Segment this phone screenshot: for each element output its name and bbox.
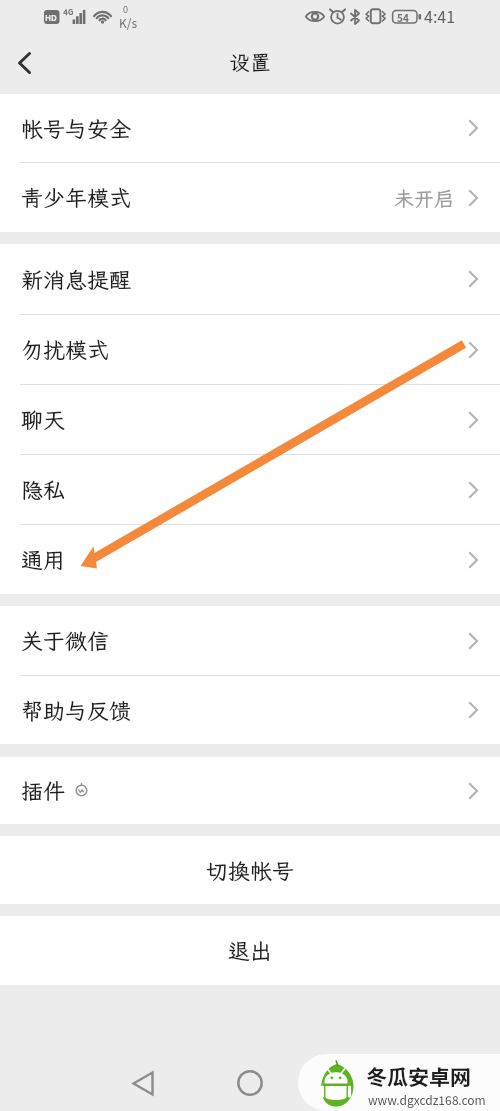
staticText: 退出 (228, 936, 273, 965)
staticText: 勿扰模式 (21, 335, 110, 364)
staticText: 聊天 (21, 405, 66, 434)
button[interactable]: 青少年模式 (0, 163, 500, 232)
staticText: 0 (123, 3, 128, 16)
staticText: 帮助与反馈 (21, 696, 132, 725)
staticText: 设置 (229, 48, 271, 76)
button[interactable]: 帐号与安全 (0, 94, 500, 162)
button[interactable]: 插件 (0, 757, 500, 824)
button[interactable]: Home (231, 1064, 269, 1102)
staticText: 青少年模式 (21, 183, 132, 212)
staticText: 未开启 (394, 185, 454, 211)
button[interactable]: Back (124, 1064, 162, 1102)
staticText: 4G (63, 6, 74, 18)
button[interactable]: 退出 (0, 916, 500, 985)
staticText: www.dgxcdz168.com (368, 1091, 486, 1108)
staticText: 冬瓜安卓网 (366, 1061, 471, 1091)
button[interactable]: 聊天 (0, 385, 500, 454)
button[interactable]: 帮助与反馈 (0, 676, 500, 744)
staticText: 插件 (21, 776, 66, 805)
button[interactable]: 新消息提醒 (0, 244, 500, 314)
staticText: 新消息提醒 (21, 265, 132, 294)
button[interactable]: 切换帐号 (0, 836, 500, 904)
staticText: K/s (119, 14, 138, 31)
staticText: HD (45, 12, 57, 24)
button[interactable]: 隐私 (0, 455, 500, 524)
button[interactable]: 通用 (0, 525, 500, 594)
staticText: 通用 (21, 545, 66, 574)
staticText: 关于微信 (21, 626, 110, 655)
staticText: 4:41 (424, 4, 456, 27)
staticText: 54 (397, 10, 409, 24)
staticText: 帐号与安全 (21, 114, 132, 143)
button[interactable]: 关于微信 (0, 606, 500, 675)
button[interactable]: 勿扰模式 (0, 315, 500, 384)
button[interactable]: Back (0, 39, 48, 87)
staticText: 隐私 (21, 475, 66, 504)
staticText: 切换帐号 (206, 856, 295, 885)
